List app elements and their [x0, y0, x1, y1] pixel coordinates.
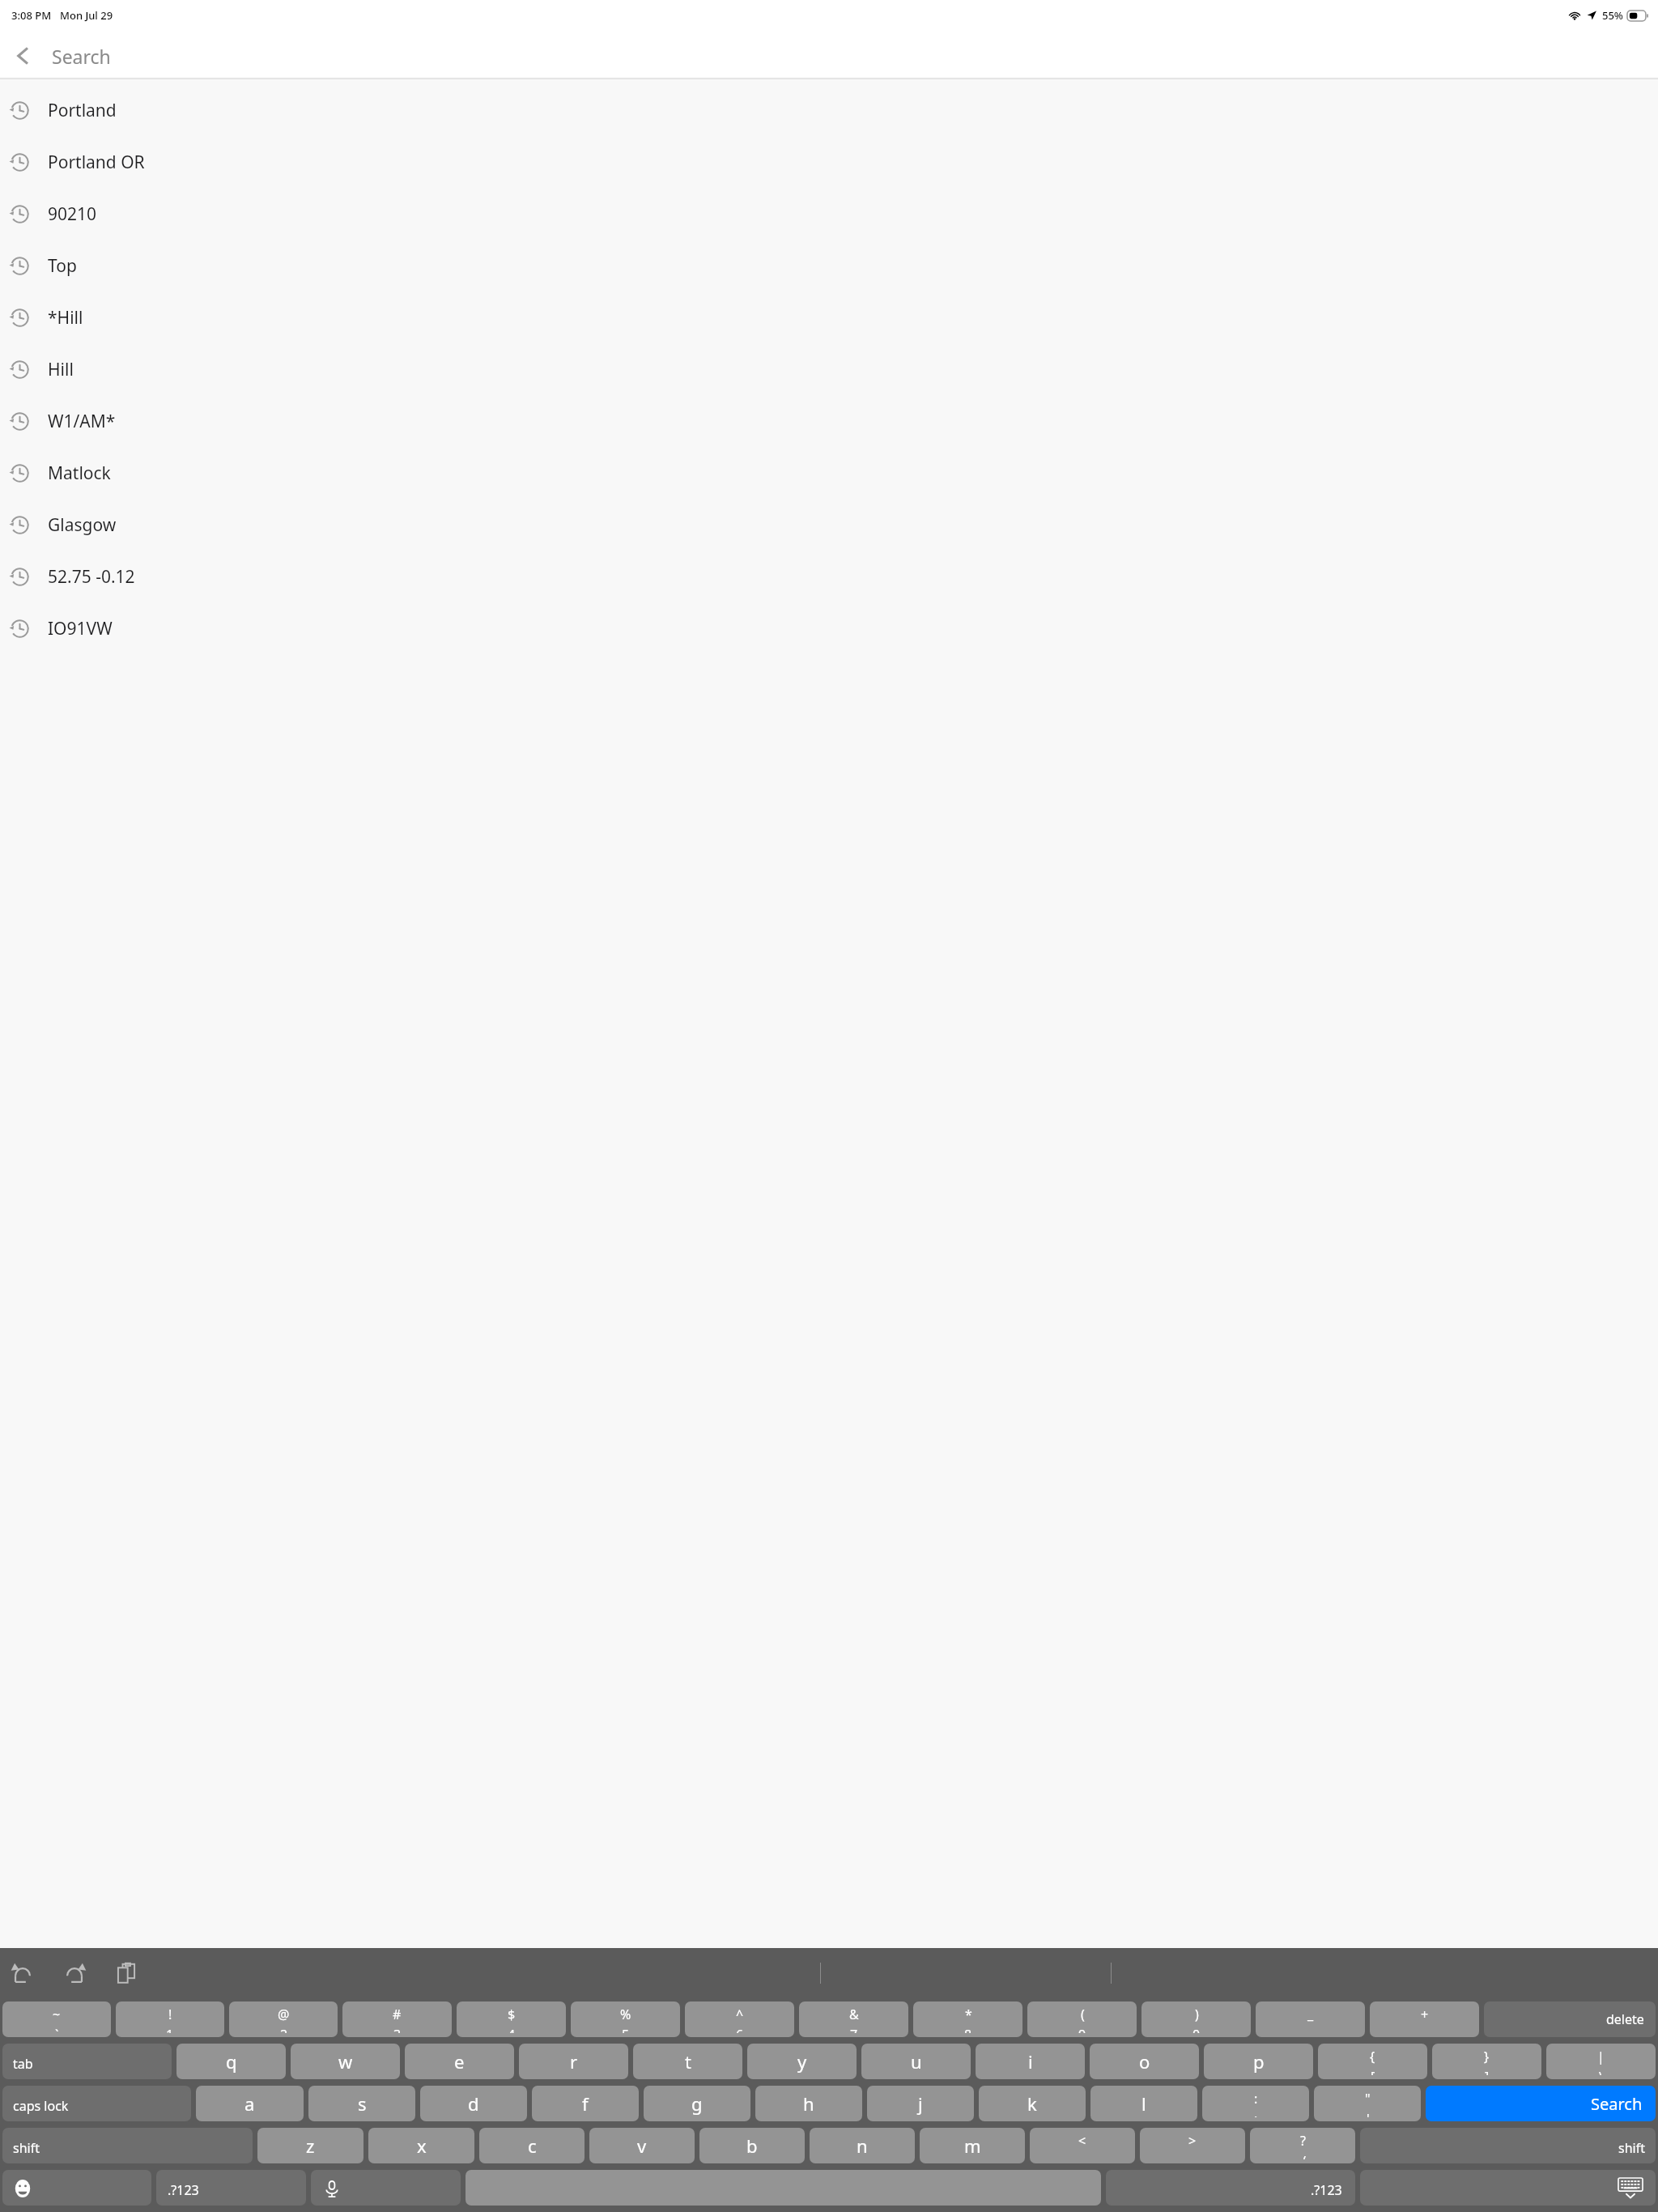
- button[interactable]: n: [810, 2128, 915, 2163]
- button[interactable]: caps lock: [2, 2086, 191, 2121]
- button[interactable]: Top: [0, 240, 1658, 291]
- button[interactable]: <: [1030, 2128, 1135, 2163]
- staticText: ': [1367, 2110, 1370, 2117]
- staticText: 9: [1078, 2026, 1086, 2033]
- button[interactable]: y: [747, 2044, 857, 2079]
- staticText: .?123: [168, 2181, 199, 2199]
- button[interactable]: ": [1314, 2086, 1421, 2121]
- button[interactable]: :: [1202, 2086, 1309, 2121]
- button[interactable]: %: [571, 2001, 680, 2037]
- button[interactable]: f: [532, 2086, 639, 2121]
- button[interactable]: Search: [1426, 2086, 1656, 2121]
- button[interactable]: @: [229, 2001, 338, 2037]
- staticText: delete: [1606, 2010, 1644, 2028]
- button[interactable]: g: [644, 2086, 750, 2121]
- button[interactable]: 90210: [0, 188, 1658, 240]
- button[interactable]: b: [699, 2128, 805, 2163]
- button[interactable]: e: [405, 2044, 514, 2079]
- button[interactable]: r: [519, 2044, 628, 2079]
- staticText: %: [620, 2006, 631, 2023]
- staticText: ^: [736, 2006, 744, 2023]
- button[interactable]: Back: [0, 33, 45, 79]
- button[interactable]: [2, 2170, 151, 2206]
- button[interactable]: Hide keyboard: [1360, 2170, 1656, 2206]
- button[interactable]: Redo: [55, 1954, 94, 1993]
- button[interactable]: d: [420, 2086, 527, 2121]
- button[interactable]: x: [368, 2128, 474, 2163]
- button[interactable]: Hill: [0, 343, 1658, 395]
- button[interactable]: !: [116, 2001, 224, 2037]
- button[interactable]: W1/AM*: [0, 395, 1658, 447]
- button[interactable]: delete: [1484, 2001, 1656, 2037]
- button[interactable]: t: [633, 2044, 742, 2079]
- staticText: +: [1421, 2006, 1429, 2023]
- staticText: b: [746, 2133, 758, 2158]
- button[interactable]: h: [755, 2086, 862, 2121]
- button[interactable]: p: [1204, 2044, 1313, 2079]
- staticText: caps lock: [13, 2097, 69, 2115]
- button[interactable]: [311, 2170, 461, 2206]
- button[interactable]: ~: [2, 2001, 111, 2037]
- button[interactable]: *Hill: [0, 291, 1658, 343]
- button[interactable]: _: [1256, 2001, 1365, 2037]
- other: Hide keyboard: [1618, 2178, 1643, 2199]
- button[interactable]: |: [1546, 2044, 1656, 2079]
- button[interactable]: *: [913, 2001, 1022, 2037]
- staticText: p: [1253, 2049, 1265, 2074]
- button[interactable]: z: [257, 2128, 363, 2163]
- button[interactable]: .?123: [156, 2170, 306, 2206]
- button[interactable]: 52.75 -0.12: [0, 551, 1658, 602]
- staticText: z: [306, 2133, 315, 2158]
- button[interactable]: IO91VW: [0, 602, 1658, 654]
- button[interactable]: }: [1432, 2044, 1541, 2079]
- button[interactable]: (: [1027, 2001, 1137, 2037]
- staticText: {: [1370, 2048, 1375, 2065]
- button[interactable]: {: [1318, 2044, 1427, 2079]
- button[interactable]: l: [1090, 2086, 1197, 2121]
- button[interactable]: Glasgow: [0, 499, 1658, 551]
- staticText: Glasgow: [48, 513, 117, 537]
- staticText: h: [803, 2091, 814, 2116]
- button[interactable]: >: [1140, 2128, 1245, 2163]
- staticText: a: [244, 2091, 255, 2116]
- button[interactable]: Matlock: [0, 447, 1658, 499]
- staticText: t: [685, 2049, 691, 2074]
- staticText: shift: [1618, 2139, 1645, 2157]
- button[interactable]: v: [589, 2128, 695, 2163]
- button[interactable]: $: [457, 2001, 566, 2037]
- staticText: 0: [1192, 2026, 1201, 2033]
- button[interactable]: i: [976, 2044, 1085, 2079]
- staticText: W1/AM*: [48, 410, 116, 433]
- button[interactable]: c: [479, 2128, 585, 2163]
- button[interactable]: k: [979, 2086, 1086, 2121]
- button[interactable]: Portland: [0, 84, 1658, 136]
- button[interactable]: Paste: [107, 1954, 146, 1993]
- button[interactable]: a: [196, 2086, 304, 2121]
- button[interactable]: Portland OR: [0, 136, 1658, 188]
- button[interactable]: ): [1141, 2001, 1251, 2037]
- button[interactable]: shift: [2, 2128, 253, 2163]
- button[interactable]: ^: [685, 2001, 794, 2037]
- button[interactable]: w: [291, 2044, 400, 2079]
- button[interactable]: #: [342, 2001, 452, 2037]
- button[interactable]: q: [176, 2044, 286, 2079]
- staticText: e: [454, 2049, 465, 2074]
- button[interactable]: tab: [2, 2044, 172, 2079]
- button[interactable]: shift: [1360, 2128, 1656, 2163]
- button[interactable]: u: [861, 2044, 971, 2079]
- button[interactable]: &: [799, 2001, 908, 2037]
- staticText: &: [849, 2006, 859, 2023]
- button[interactable]: m: [920, 2128, 1025, 2163]
- button[interactable]: .?123: [1106, 2170, 1355, 2206]
- button[interactable]: +: [1370, 2001, 1479, 2037]
- staticText: 8: [964, 2026, 972, 2033]
- button[interactable]: o: [1090, 2044, 1199, 2079]
- button[interactable]: s: [308, 2086, 415, 2121]
- button[interactable]: Undo: [3, 1954, 42, 1993]
- button[interactable]: j: [867, 2086, 974, 2121]
- button[interactable]: ?: [1250, 2128, 1355, 2163]
- staticText: 55%: [1602, 8, 1623, 23]
- staticText: tab: [13, 2055, 33, 2073]
